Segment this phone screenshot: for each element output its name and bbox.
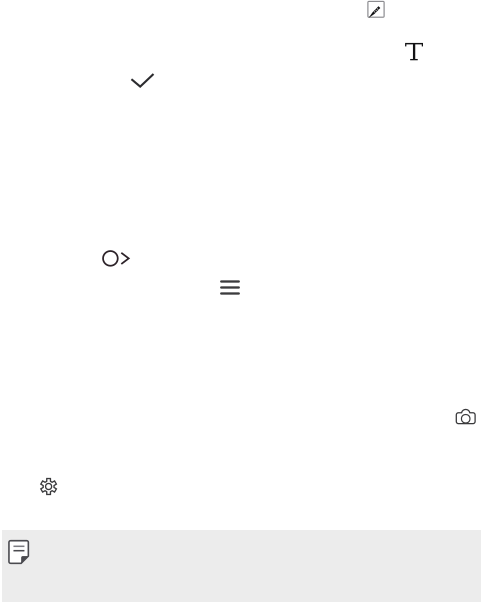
button[interactable]: Done — [130, 72, 155, 89]
button[interactable]: Menu — [220, 280, 240, 295]
button[interactable]: Camera — [456, 407, 476, 424]
button[interactable]: Text format — [405, 42, 423, 61]
button[interactable]: Settings — [40, 478, 57, 495]
button[interactable]: Compose — [367, 1, 385, 18]
button[interactable]: Next — [101, 249, 130, 267]
button[interactable]: Notes — [8, 540, 29, 564]
